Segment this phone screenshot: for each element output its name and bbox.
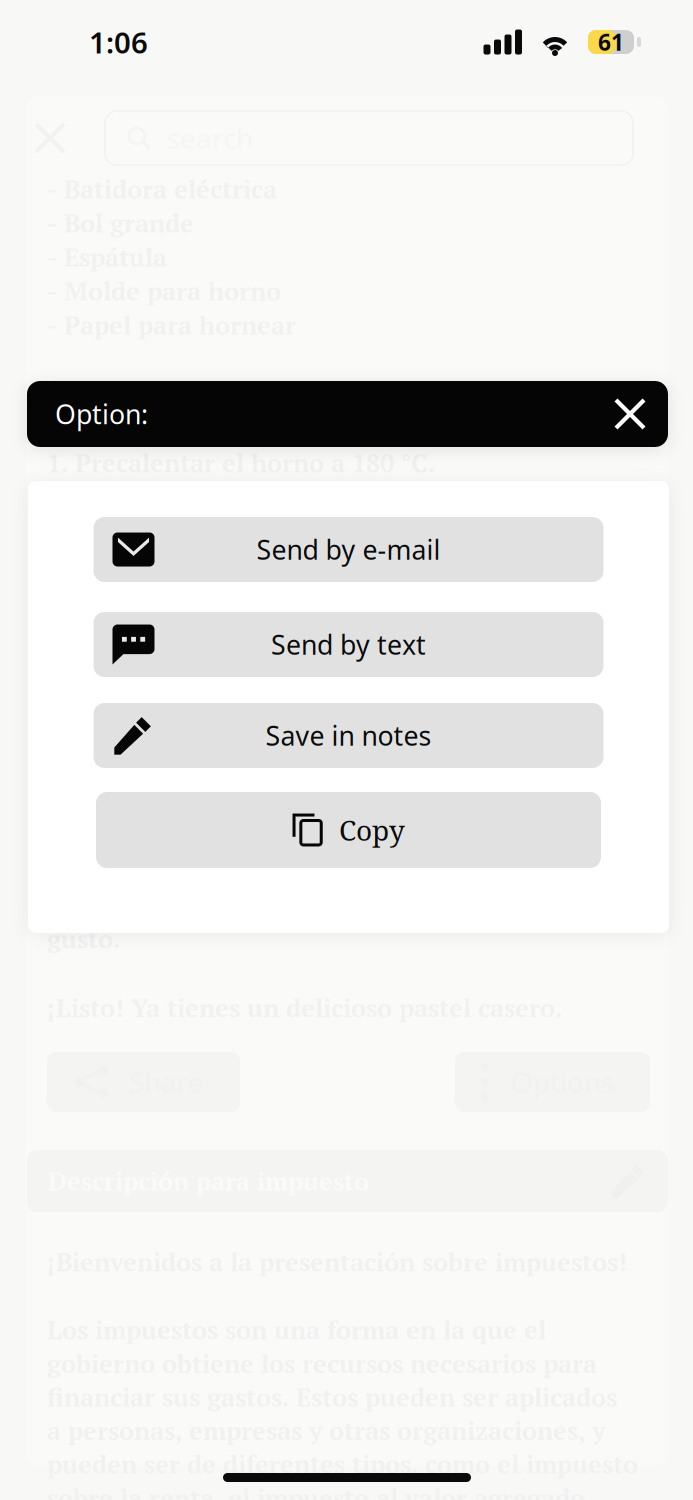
- staticText: a personas, empresas y otras organizacio…: [47, 1414, 605, 1447]
- staticText: ¡Listo! Ya tienes un delicioso pastel ca…: [47, 991, 562, 1025]
- staticText: - Espátula: [47, 240, 167, 274]
- staticText: ¡Bienvenidos a la presentación sobre imp…: [47, 1245, 627, 1279]
- button[interactable]: Send by text: [93, 612, 603, 677]
- staticText: 1. Precalentar el horno a 180 °C.: [47, 446, 435, 480]
- staticText: pueden ser de diferentes tipos, como el …: [47, 1447, 638, 1481]
- staticText: Option:: [55, 396, 148, 432]
- staticText: Save in notes: [265, 718, 431, 753]
- staticText: financiar sus gastos. Estos pueden ser a…: [47, 1380, 617, 1414]
- button[interactable]: Copy: [96, 792, 601, 868]
- staticText: - Papel para hornear: [47, 308, 296, 342]
- button[interactable]: Send by e-mail: [93, 517, 603, 582]
- button[interactable]: Save in notes: [93, 703, 603, 768]
- staticText: gobierno obtiene los recursos necesarios…: [47, 1347, 597, 1380]
- staticText: - Molde para horno: [47, 274, 281, 308]
- staticText: 61: [598, 27, 624, 57]
- staticText: - Batidora eléctrica: [47, 172, 277, 206]
- staticText: sobre la renta, el impuesto al valor agr…: [47, 1481, 585, 1500]
- staticText: 1:06: [89, 22, 148, 61]
- button[interactable]: Close: [602, 386, 658, 442]
- staticText: Send by text: [271, 627, 426, 662]
- staticText: - Bol grande: [47, 206, 194, 240]
- staticText: gusto.: [47, 922, 120, 956]
- staticText: Los impuestos son una forma en la que el: [47, 1313, 546, 1347]
- staticText: Copy: [339, 811, 405, 849]
- staticText: Send by e-mail: [256, 532, 440, 567]
